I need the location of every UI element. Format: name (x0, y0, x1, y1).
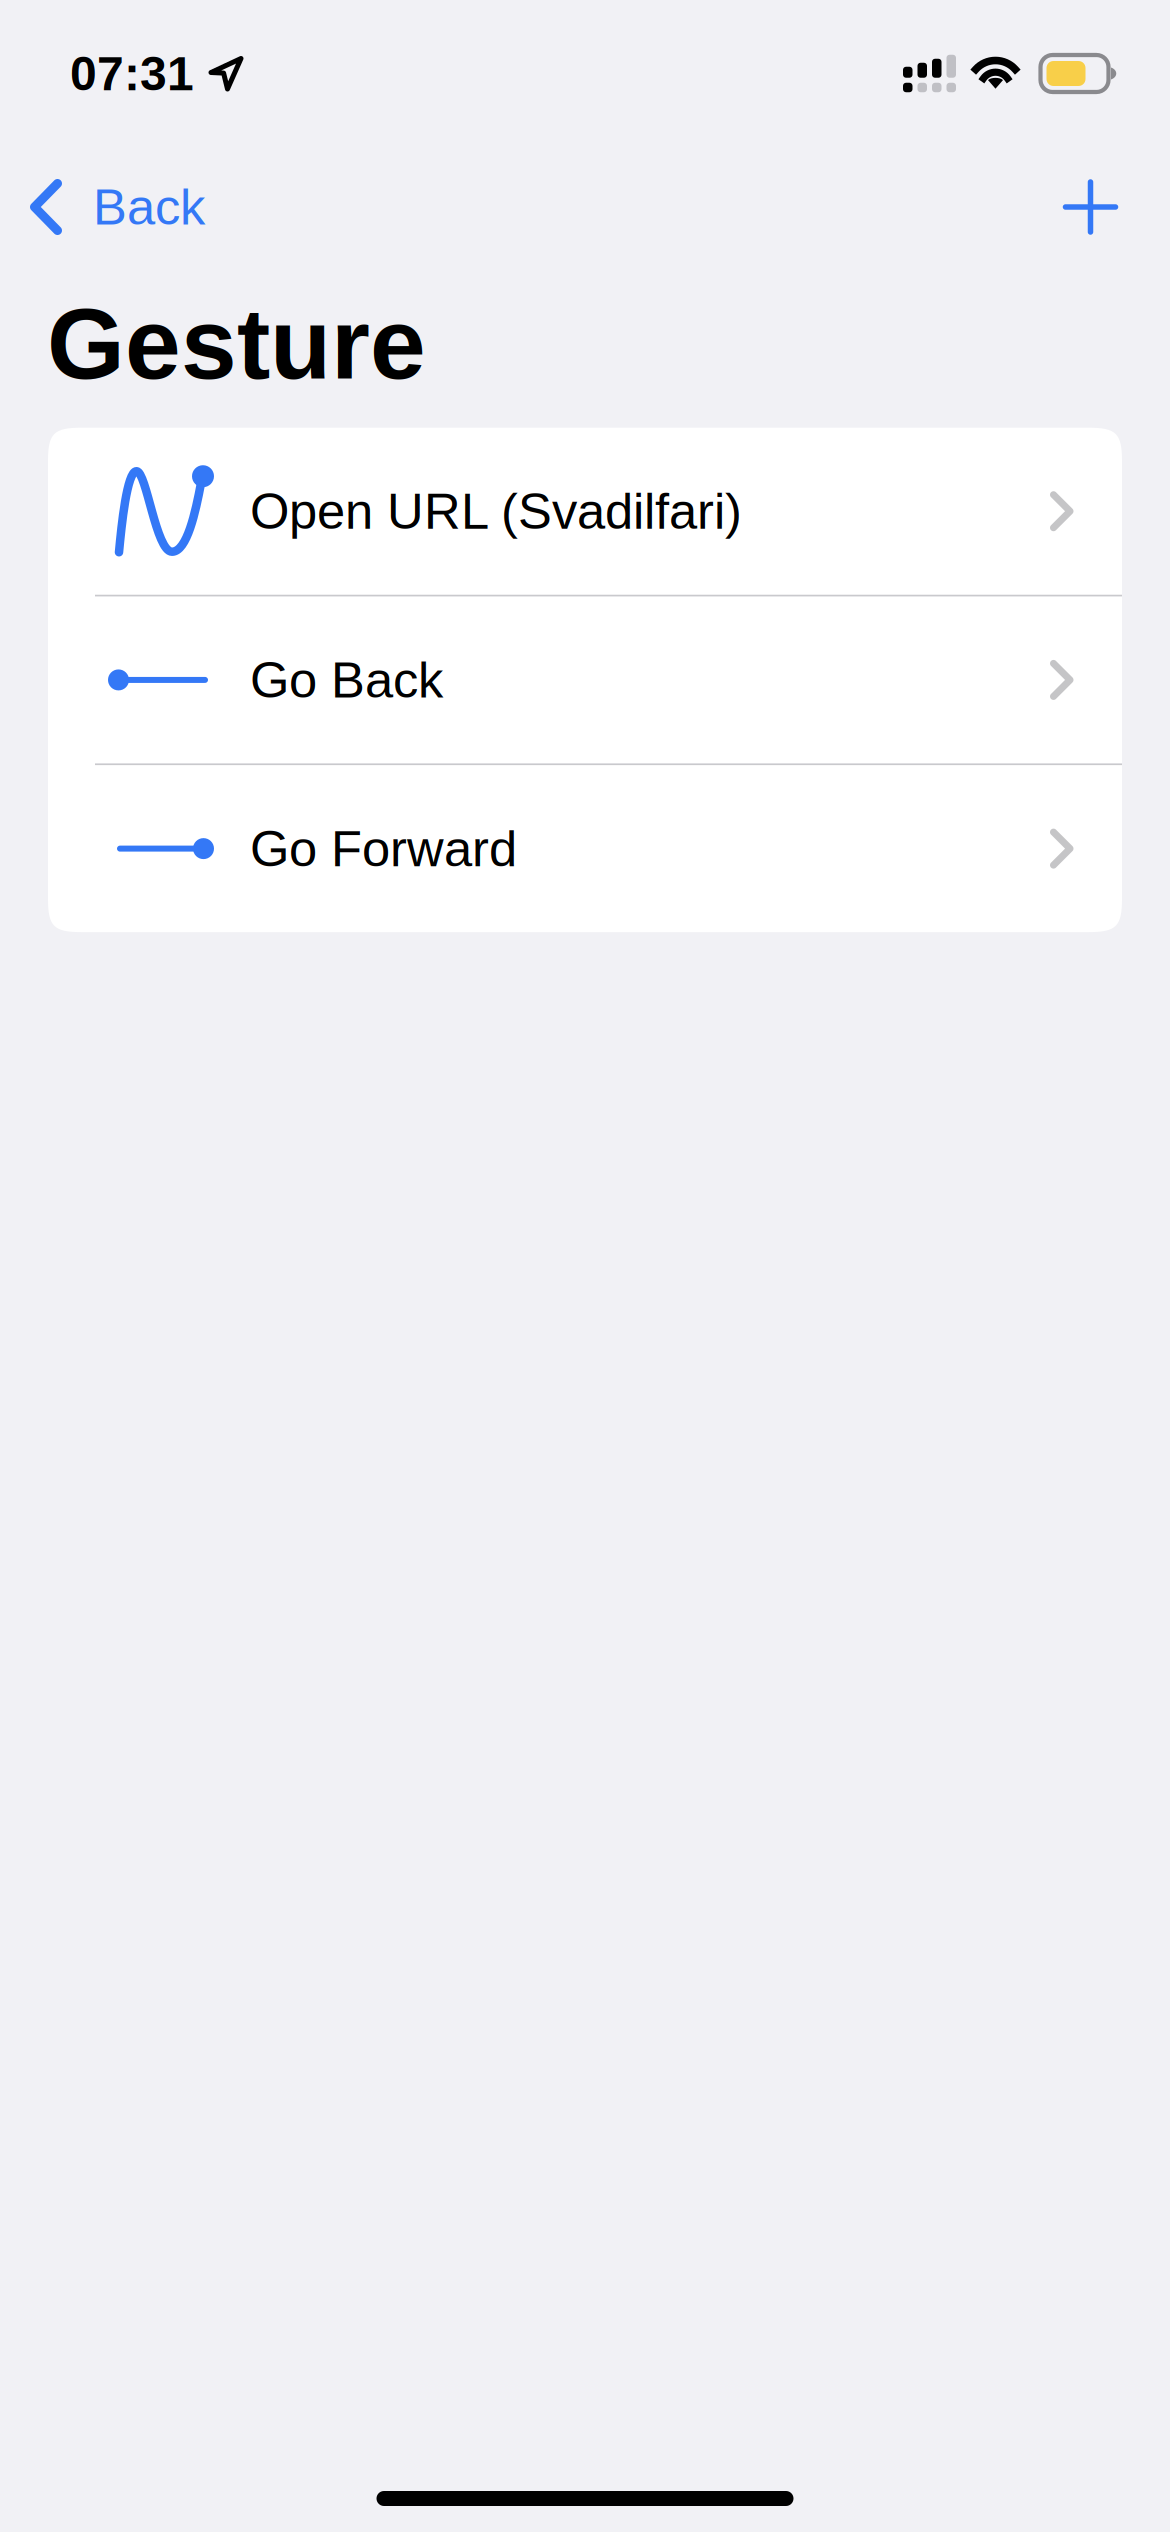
staticText: Open URL (Svadilfari) (250, 483, 742, 539)
staticText: Go Forward (250, 820, 517, 877)
staticText: 07:31 (70, 47, 194, 100)
button[interactable]: Go Back (48, 596, 1122, 763)
button[interactable]: Add gesture (1037, 164, 1144, 250)
staticText: Back (93, 179, 205, 235)
button[interactable]: Back (0, 164, 225, 250)
staticText: Gesture (47, 288, 426, 400)
staticText: Go Back (250, 652, 443, 708)
button[interactable]: Go Forward (48, 765, 1122, 932)
button[interactable]: Open URL (Svadilfari) (48, 428, 1122, 595)
